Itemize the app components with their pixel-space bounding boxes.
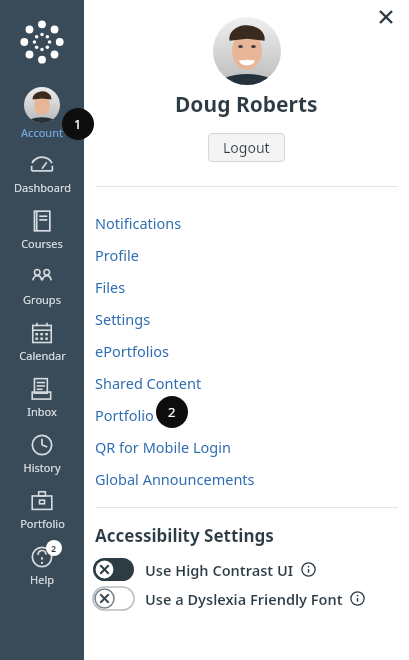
button[interactable]: Account	[0, 84, 84, 143]
button[interactable]: Portfolio	[0, 479, 84, 535]
button[interactable]: Dashboard	[0, 143, 84, 199]
staticText: ePortfolios	[95, 341, 169, 361]
button[interactable]: Use a Dyslexia Friendly Font	[84, 586, 409, 611]
button[interactable]: Shared Content	[84, 367, 409, 399]
staticText: 1	[74, 115, 82, 133]
staticText: Settings	[95, 309, 151, 329]
button[interactable]: Logout	[208, 133, 285, 162]
button[interactable]: Files	[84, 271, 409, 303]
staticText: Global Announcements	[95, 469, 255, 489]
staticText: Portfolio	[20, 516, 65, 531]
button[interactable]: Canvas	[6, 6, 78, 78]
staticText: Use a Dyslexia Friendly Font	[145, 589, 343, 609]
button[interactable]: ePortfolios	[84, 335, 409, 367]
staticText: Courses	[21, 236, 63, 251]
button[interactable]: Use High Contrast UI	[84, 557, 409, 582]
staticText: Groups	[23, 292, 61, 307]
button[interactable]: Info	[350, 591, 365, 606]
button[interactable]: History	[0, 423, 84, 479]
staticText: 2	[168, 403, 176, 421]
button[interactable]: Groups	[0, 255, 84, 311]
button[interactable]: Close	[373, 4, 399, 30]
staticText: Account	[21, 125, 63, 140]
button[interactable]: Portfolio	[84, 399, 409, 431]
staticText: Dashboard	[14, 180, 71, 195]
staticText: 2	[51, 542, 57, 554]
staticText: Logout	[223, 138, 270, 157]
button[interactable]: Info	[301, 562, 316, 577]
staticText: History	[23, 460, 61, 475]
button[interactable]: QR for Mobile Login	[84, 431, 409, 463]
staticText: Shared Content	[95, 373, 202, 393]
staticText: Inbox	[27, 404, 57, 419]
staticText: QR for Mobile Login	[95, 437, 231, 457]
staticText: Profile	[95, 245, 139, 265]
staticText: Files	[95, 277, 126, 297]
button[interactable]: Calendar	[0, 311, 84, 367]
button[interactable]: Inbox	[0, 367, 84, 423]
button[interactable]: Global Announcements	[84, 463, 409, 495]
staticText: Accessibility Settings	[95, 524, 274, 547]
staticText: Calendar	[19, 348, 66, 363]
button[interactable]: Settings	[84, 303, 409, 335]
button[interactable]: 2	[0, 535, 84, 591]
staticText: Use High Contrast UI	[145, 560, 294, 580]
staticText: Doug Roberts	[175, 90, 318, 119]
button[interactable]: Courses	[0, 199, 84, 255]
button[interactable]: Notifications	[84, 207, 409, 239]
button[interactable]: Profile	[84, 239, 409, 271]
staticText: Help	[30, 572, 54, 587]
staticText: Notifications	[95, 213, 182, 233]
staticText: Portfolio	[95, 405, 154, 425]
